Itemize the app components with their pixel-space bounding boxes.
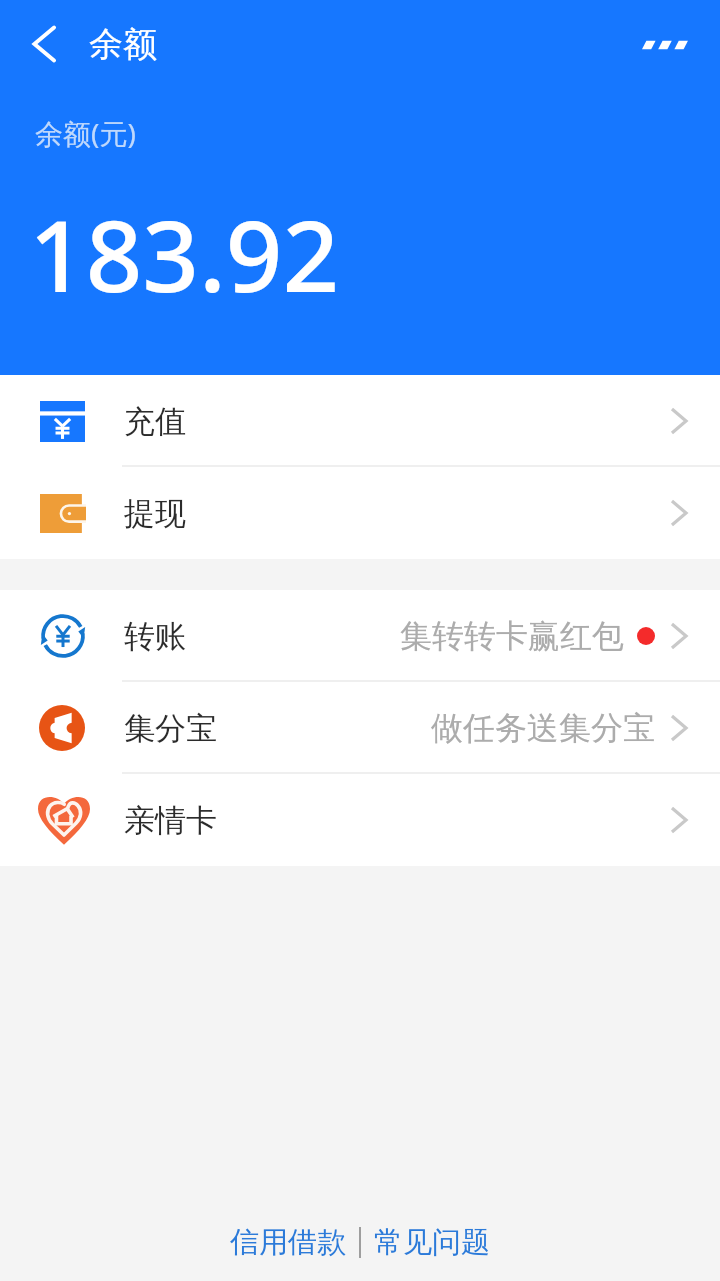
staticText: 转账 <box>124 617 186 656</box>
button[interactable]: 常见问题 <box>372 1216 492 1269</box>
button[interactable]: 亲情卡 <box>0 774 720 866</box>
staticText: 余额(元) <box>35 114 136 152</box>
staticText: 提现 <box>124 494 186 533</box>
button[interactable]: 提现 <box>0 467 720 559</box>
button[interactable]: 转账 <box>0 590 720 682</box>
staticText: 信用借款 <box>230 1224 346 1261</box>
button[interactable]: 集分宝 <box>0 682 720 774</box>
button[interactable]: 信用借款 <box>228 1216 348 1269</box>
staticText: 集分宝 <box>124 709 217 748</box>
staticText: 充值 <box>124 402 186 441</box>
staticText: 183.92 <box>29 186 340 321</box>
staticText: 常见问题 <box>374 1224 490 1261</box>
button[interactable]: Back <box>14 14 74 74</box>
staticText: 亲情卡 <box>124 801 217 840</box>
staticText: 余额 <box>89 23 157 66</box>
button[interactable]: More options <box>623 10 703 80</box>
staticText: 做任务送集分宝 <box>431 708 655 748</box>
button[interactable]: 充值 <box>0 375 720 467</box>
staticText: 集转转卡赢红包 <box>400 616 624 656</box>
